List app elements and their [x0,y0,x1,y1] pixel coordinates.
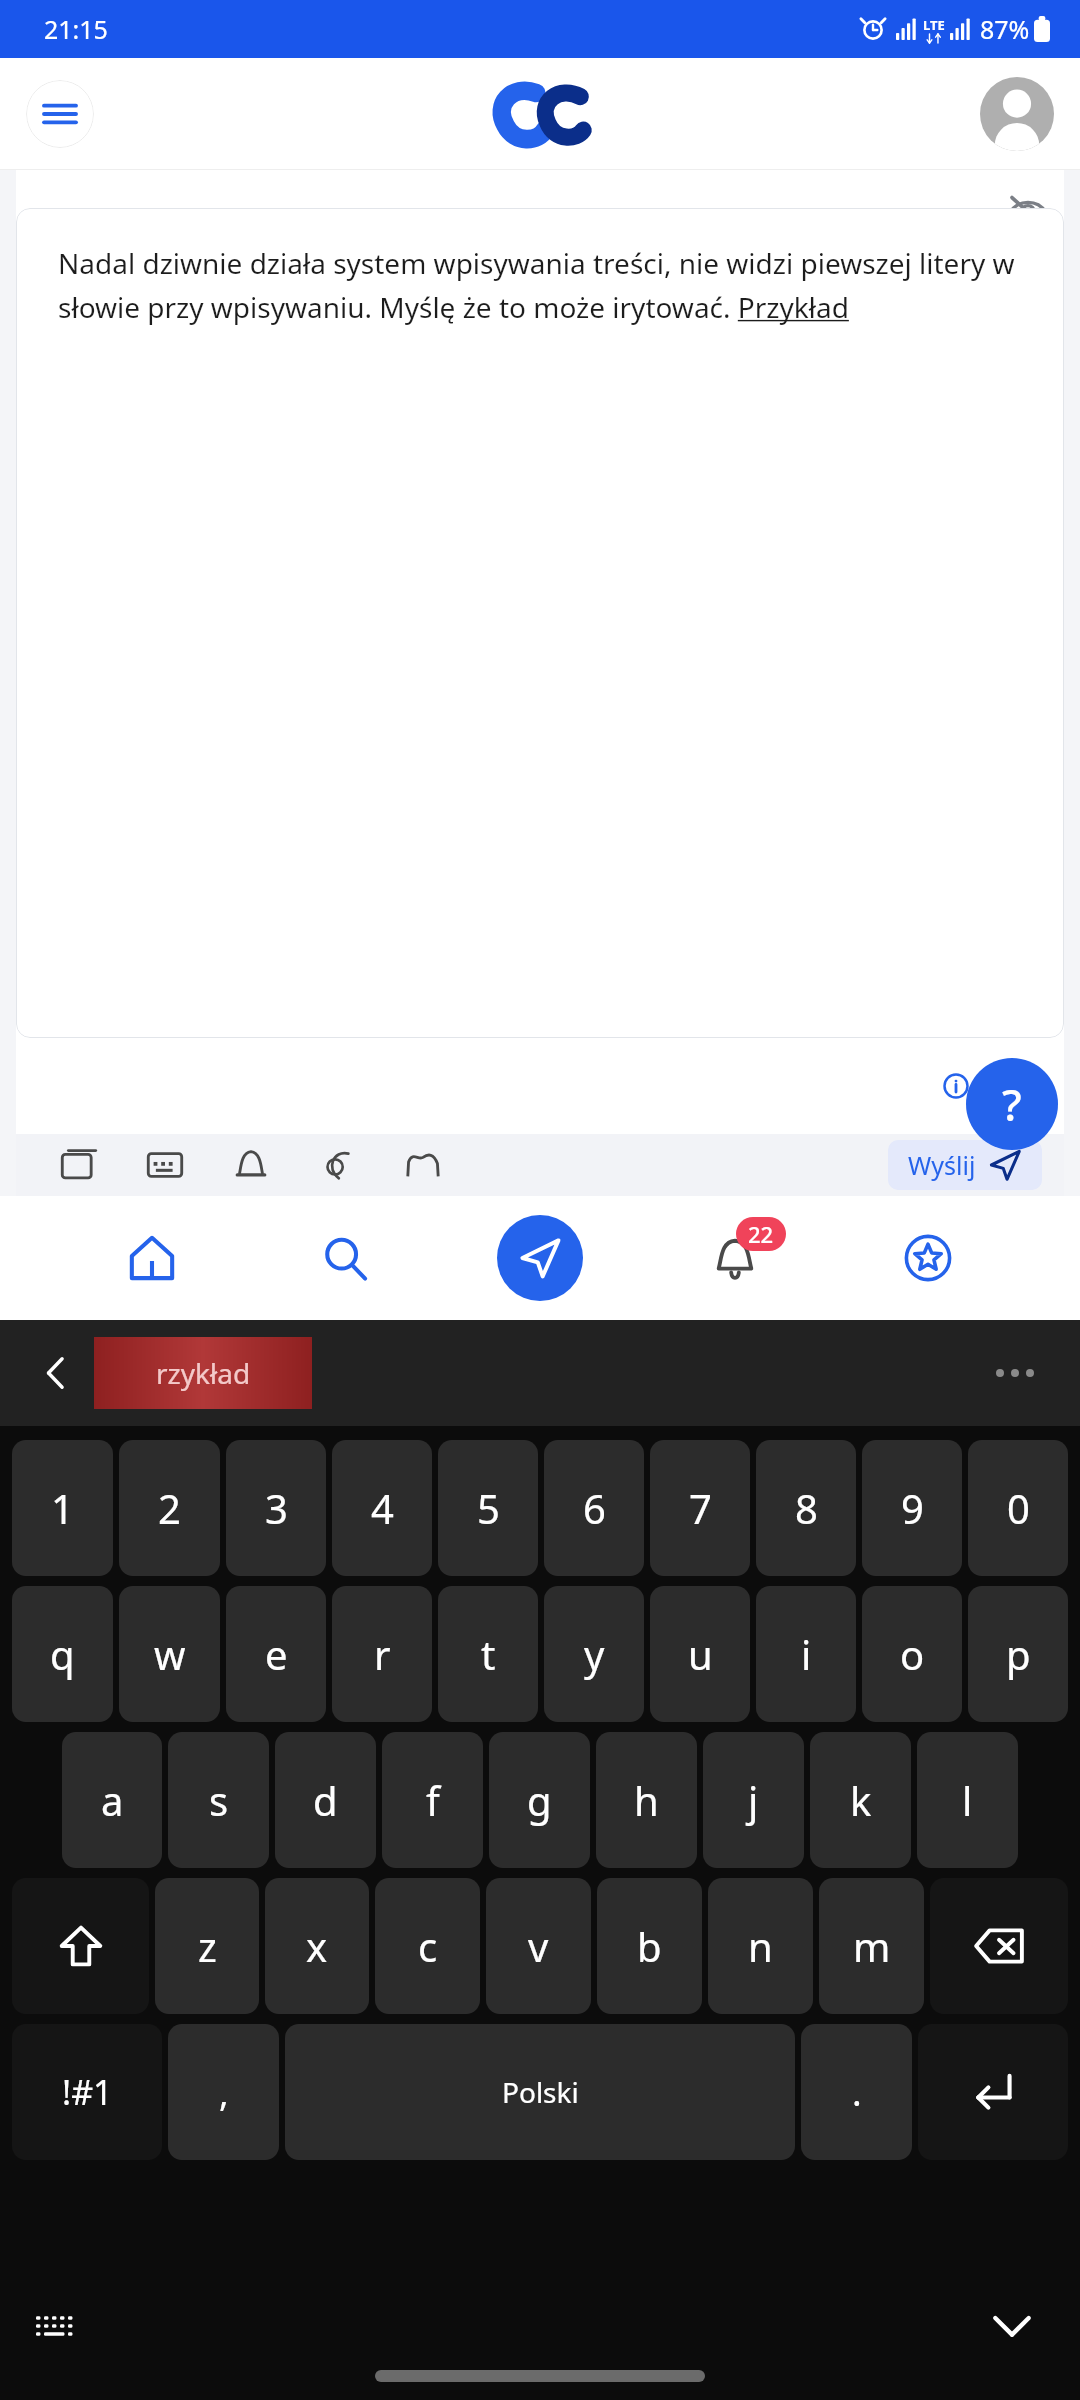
staticText: k [850,1773,872,1827]
staticText: Wyślij [908,1148,976,1182]
button[interactable]: Switch keyboard [28,2297,84,2353]
staticText: q [50,1627,75,1681]
staticText: Nadal dziwnie działa system wpisywania t… [58,244,1030,326]
button[interactable]: 6 [544,1440,644,1576]
button[interactable]: g [489,1732,590,1868]
button[interactable]: Notifications [693,1216,777,1300]
button[interactable]: 0 [968,1440,1068,1576]
button[interactable]: v [486,1878,591,2014]
button[interactable]: y [544,1586,644,1722]
button[interactable]: n [708,1878,813,2014]
button[interactable]: Menu [26,80,94,148]
button[interactable]: Send [497,1215,583,1301]
button[interactable]: x [265,1878,369,2014]
button[interactable]: j [703,1732,804,1868]
staticText: LTE [923,16,945,34]
button[interactable]: 4 [332,1440,432,1576]
staticText: m [853,1919,891,1973]
button[interactable]: Previous [30,1347,82,1399]
staticText: s [209,1773,229,1827]
staticText: f [426,1773,440,1827]
button[interactable]: Help [966,1058,1058,1150]
button[interactable]: Hide [1000,184,1056,240]
staticText: ? [1002,1074,1022,1134]
button[interactable]: 7 [650,1440,750,1576]
button[interactable]: Keyboard [142,1142,188,1188]
staticText: c [418,1919,438,1973]
staticText: 9 [901,1481,924,1535]
button[interactable]: Polski [285,2024,795,2160]
button[interactable]: w [119,1586,220,1722]
staticText: d [313,1773,338,1827]
staticText: . [852,2068,862,2117]
staticText: v [528,1919,549,1973]
button[interactable]: Backspace [930,1878,1068,2014]
button[interactable]: Profile [980,77,1054,151]
staticText: 87% [980,12,1030,46]
button[interactable]: 2 [119,1440,220,1576]
button[interactable]: Hide keyboard [982,2295,1042,2355]
button[interactable]: Image [400,1142,446,1188]
button[interactable]: o [862,1586,962,1722]
button[interactable]: Attach [228,1142,274,1188]
button[interactable]: Wyślij [888,1140,1042,1190]
button[interactable]: f [382,1732,483,1868]
staticText: i [801,1627,812,1681]
button[interactable]: s [168,1732,269,1868]
button[interactable]: 3 [226,1440,326,1576]
button[interactable]: 9 [862,1440,962,1576]
button[interactable]: l [917,1732,1018,1868]
button[interactable]: e [226,1586,326,1722]
staticText: 7 [689,1481,712,1535]
staticText: !#1 [62,2069,113,2115]
button[interactable]: i [756,1586,856,1722]
button[interactable]: q [12,1586,113,1722]
button[interactable]: rzykład [94,1337,312,1409]
button[interactable]: c [375,1878,480,2014]
staticText: w [154,1627,186,1681]
button[interactable]: Home [110,1216,194,1300]
button[interactable]: . [801,2024,912,2160]
staticText: t [481,1627,496,1681]
button[interactable] [988,1361,1042,1385]
staticText: g [527,1773,552,1827]
staticText: 0 [1007,1481,1030,1535]
button[interactable]: r [332,1586,432,1722]
button[interactable]: a [62,1732,162,1868]
button[interactable]: z [155,1878,259,2014]
button[interactable]: 1 [12,1440,113,1576]
button[interactable]: Search [303,1216,387,1300]
staticText: u [688,1627,713,1681]
staticText: a [101,1773,124,1827]
button[interactable]: Enter [918,2024,1068,2160]
button[interactable]: !#1 [12,2024,162,2160]
staticText: Polski [979,1069,1048,1103]
staticText: n [748,1919,773,1973]
button[interactable]: Undo [56,1142,102,1188]
staticText: y [584,1627,605,1681]
button[interactable]: b [597,1878,702,2014]
button[interactable]: u [650,1586,750,1722]
button[interactable]: Shift [12,1878,149,2014]
button[interactable]: d [275,1732,376,1868]
staticText: 1 [51,1481,74,1535]
staticText: e [265,1627,288,1681]
button[interactable]: Nadal dziwnie działa system wpisywania t… [16,208,1064,1038]
button[interactable]: Favourites [886,1216,970,1300]
button[interactable]: Emoji [314,1142,360,1188]
button[interactable]: 8 [756,1440,856,1576]
staticText: 6 [583,1481,606,1535]
staticText: 21:15 [44,12,108,46]
staticText: Polski [502,2073,579,2111]
button[interactable]: h [596,1732,697,1868]
staticText: , [219,2068,229,2117]
button[interactable]: m [819,1878,924,2014]
staticText: j [748,1773,759,1827]
button[interactable]: Polski [937,1063,1054,1109]
staticText: b [637,1919,662,1973]
button[interactable]: t [438,1586,538,1722]
button[interactable]: , [168,2024,279,2160]
button[interactable]: k [810,1732,911,1868]
button[interactable]: p [968,1586,1068,1722]
button[interactable]: 5 [438,1440,538,1576]
